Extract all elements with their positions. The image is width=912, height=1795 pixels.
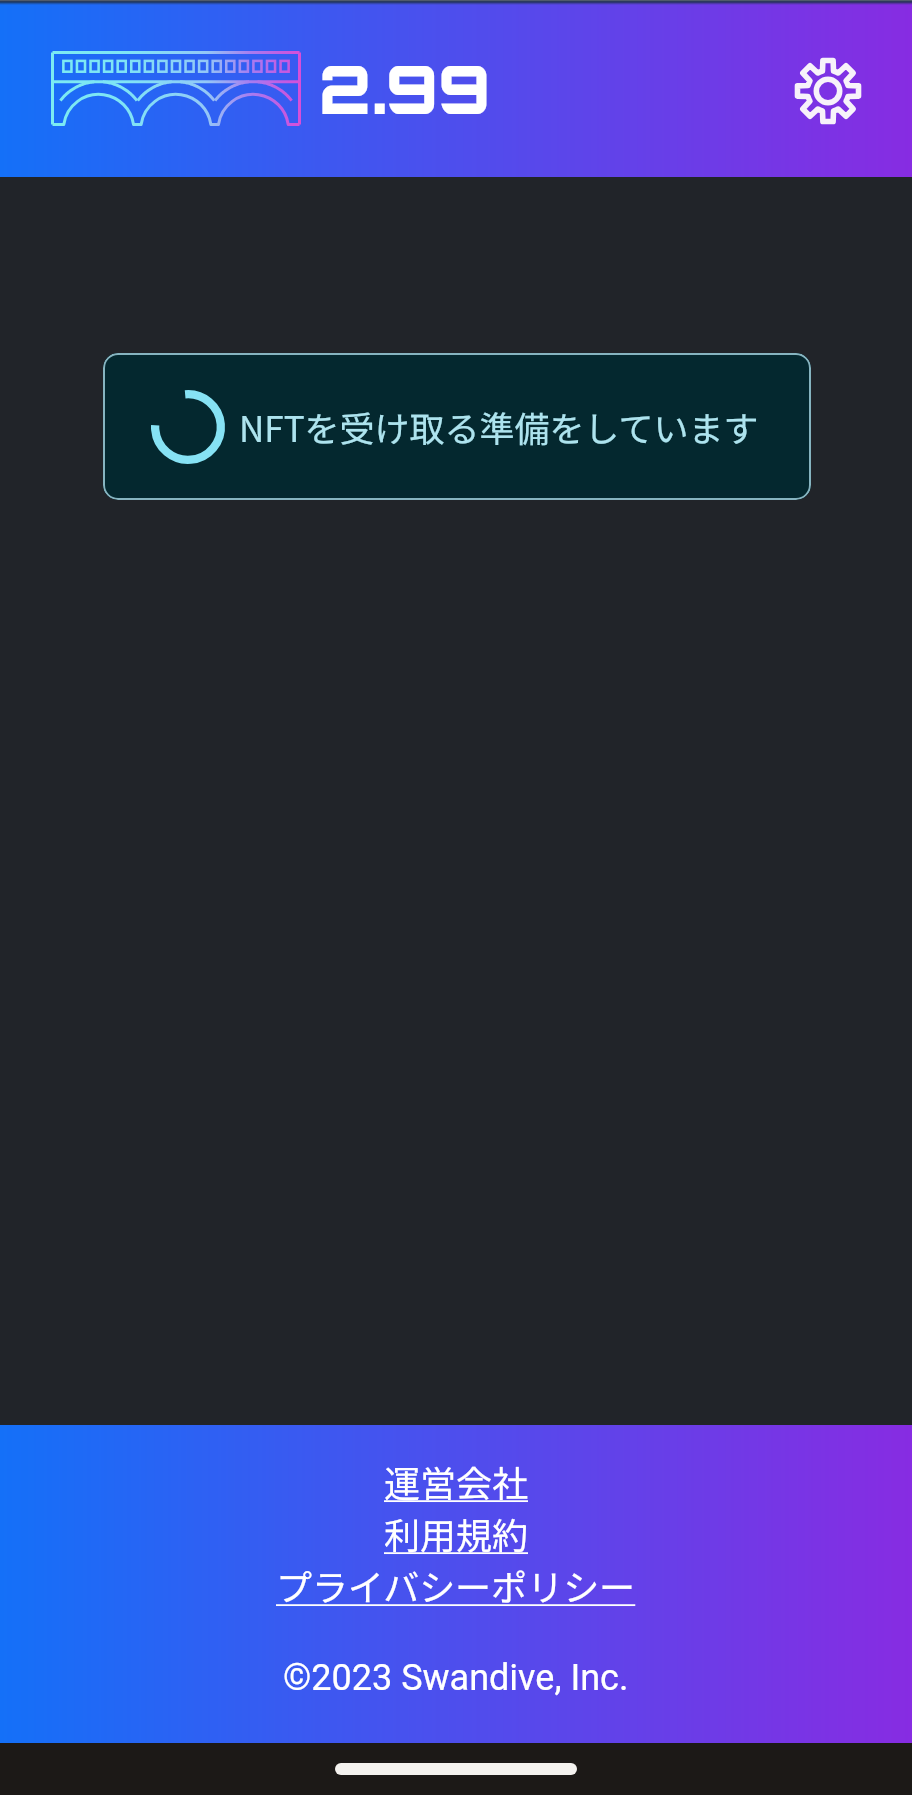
- staticText: 運営会社: [384, 1455, 529, 1507]
- staticText: 利用規約: [384, 1507, 529, 1559]
- staticText: 2.99: [319, 46, 491, 130]
- staticText: プライバシーポリシー: [276, 1559, 636, 1611]
- staticText: ©2023 Swandive, Inc.: [283, 1657, 629, 1699]
- button[interactable]: 利用規約: [384, 1507, 529, 1559]
- button[interactable]: プライバシーポリシー: [276, 1559, 636, 1611]
- button[interactable]: Settings: [780, 43, 876, 139]
- button[interactable]: NFTを受け取る準備をしています: [103, 353, 811, 500]
- button[interactable]: 運営会社: [384, 1455, 529, 1507]
- staticText: NFTを受け取る準備をしています: [239, 401, 759, 452]
